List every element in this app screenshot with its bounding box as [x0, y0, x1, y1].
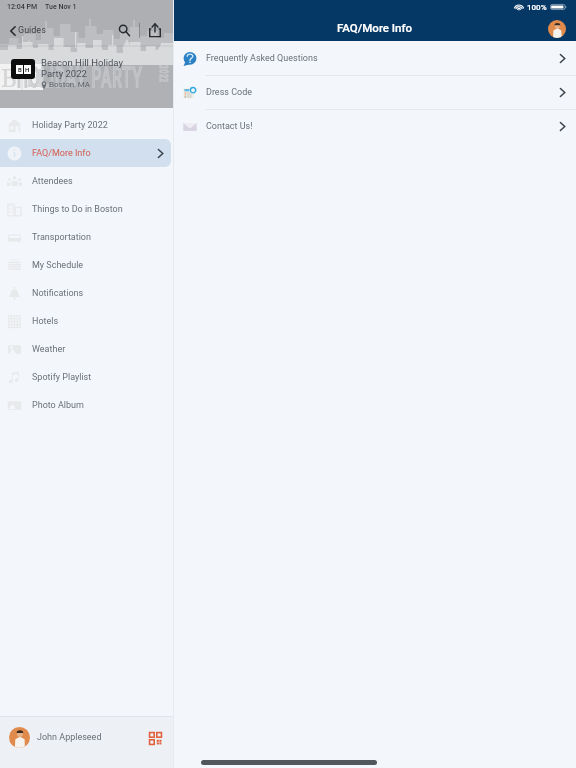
button[interactable]: John Appleseed: [0, 717, 173, 768]
button[interactable]: Share: [144, 19, 166, 41]
staticText: Boston, MA: [49, 80, 91, 89]
staticText: Weather: [32, 344, 66, 355]
staticText: 100%: [527, 3, 547, 12]
button[interactable]: Notifications: [0, 279, 171, 307]
staticText: Holiday Party 2022: [32, 120, 108, 131]
staticText: Spotify Playlist: [32, 372, 92, 383]
button[interactable]: FAQ/More Info: [0, 139, 171, 167]
button[interactable]: Holiday Party 2022: [0, 111, 171, 139]
button[interactable]: Attendees: [0, 167, 171, 195]
staticText: Tue Nov 1: [45, 3, 77, 11]
button[interactable]: Transportation: [0, 223, 171, 251]
button[interactable]: Spotify Playlist: [0, 363, 171, 391]
staticText: Contact Us!: [206, 121, 253, 132]
staticText: Hotels: [32, 316, 59, 327]
staticText: Photo Album: [32, 400, 84, 411]
staticText: Dress Code: [206, 87, 253, 98]
staticText: Guides: [18, 25, 46, 36]
staticText: Beacon Hill Holiday Party 2022: [41, 57, 123, 79]
staticText: Notifications: [32, 288, 84, 299]
staticText: Attendees: [32, 176, 73, 187]
staticText: 12:04 PM: [7, 3, 38, 11]
button[interactable]: Search: [113, 19, 135, 41]
staticText: FAQ/More Info: [337, 21, 413, 34]
button[interactable]: Guides: [0, 22, 52, 39]
button[interactable]: Photo Album: [0, 391, 171, 419]
button[interactable]: Contact Us!: [174, 110, 576, 143]
button[interactable]: Things to Do in Boston: [0, 195, 171, 223]
button[interactable]: Profile: [548, 20, 566, 38]
button[interactable]: Frequently Asked Questions: [174, 42, 576, 75]
button[interactable]: Weather: [0, 335, 171, 363]
staticText: H: [25, 66, 30, 73]
button[interactable]: QR code: [147, 730, 163, 746]
staticText: My Schedule: [32, 260, 84, 271]
staticText: Frequently Asked Questions: [206, 53, 318, 64]
button[interactable]: Hotels: [0, 307, 171, 335]
button[interactable]: Dress Code: [174, 76, 576, 109]
staticText: FAQ/More Info: [32, 148, 91, 159]
staticText: B: [18, 66, 22, 73]
staticText: Things to Do in Boston: [32, 204, 123, 215]
staticText: Transportation: [32, 232, 91, 243]
button[interactable]: My Schedule: [0, 251, 171, 279]
staticText: John Appleseed: [37, 732, 102, 743]
